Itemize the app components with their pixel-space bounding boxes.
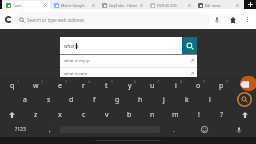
button[interactable]: g xyxy=(106,92,129,107)
button[interactable]: ! xyxy=(187,107,210,122)
button[interactable]: 8 xyxy=(164,77,187,92)
staticText: s xyxy=(47,95,51,105)
staticText: i xyxy=(175,81,177,91)
button[interactable]: n xyxy=(141,107,164,122)
button[interactable]: f xyxy=(83,92,106,107)
staticText: o xyxy=(196,81,201,91)
staticText: . xyxy=(173,126,175,134)
staticText: 7 xyxy=(157,79,160,84)
staticText: 2 xyxy=(41,79,44,84)
staticText: r xyxy=(82,81,85,91)
button[interactable]: . xyxy=(160,122,187,137)
button[interactable]: Search xyxy=(182,37,197,54)
button[interactable]: b xyxy=(118,107,141,122)
staticText: k xyxy=(185,95,189,105)
button[interactable]: New tab xyxy=(244,0,256,9)
button[interactable]: Search xyxy=(233,92,256,107)
button[interactable]: 5 xyxy=(95,77,118,92)
button[interactable]: Shift xyxy=(233,107,256,122)
staticText: v xyxy=(105,110,109,120)
button[interactable]: 0 xyxy=(210,77,233,92)
button[interactable]: Shift xyxy=(0,107,24,122)
staticText: 3 xyxy=(65,79,68,84)
button[interactable]: a xyxy=(13,92,37,107)
staticText: q xyxy=(10,81,15,91)
button[interactable]: Voice search xyxy=(210,13,223,26)
button[interactable]: ?123 xyxy=(0,122,40,137)
staticText: d xyxy=(69,95,74,105)
staticText: Tools xyxy=(13,3,43,8)
button[interactable]: 2 xyxy=(24,77,48,92)
button[interactable]: Meine Google xyxy=(50,1,98,9)
staticText: ! xyxy=(198,110,200,120)
staticText: z xyxy=(34,110,38,120)
button[interactable]: z xyxy=(24,107,48,122)
staticText: 1 xyxy=(17,79,20,84)
staticText: what is my ip xyxy=(64,58,90,64)
staticText: what is xyxy=(64,43,79,49)
button[interactable]: DVD 00 200 xyxy=(146,1,194,9)
staticText: 9 xyxy=(203,79,206,84)
staticText: l xyxy=(209,95,211,105)
staticText: GapTube - Home xyxy=(109,3,139,8)
staticText: Edr rome xyxy=(205,3,235,8)
button[interactable]: 6 xyxy=(118,77,141,92)
button[interactable]: k xyxy=(175,92,198,107)
staticText: 8 xyxy=(180,79,183,84)
staticText: Meine Google xyxy=(61,3,91,8)
button[interactable]: Emoji xyxy=(187,122,221,137)
button[interactable]: , xyxy=(40,122,60,137)
staticText: w xyxy=(33,81,39,91)
button[interactable]: Voice input xyxy=(221,122,256,137)
staticText: , xyxy=(49,126,51,134)
button[interactable]: Search or type web address xyxy=(15,12,210,27)
staticText: x xyxy=(58,110,62,120)
staticText: · xyxy=(53,123,55,128)
staticText: p xyxy=(219,81,224,91)
staticText: ? xyxy=(220,110,224,120)
staticText: y xyxy=(128,81,132,91)
button[interactable]: x xyxy=(48,107,72,122)
button[interactable]: l xyxy=(198,92,221,107)
staticText: 5 xyxy=(111,79,114,84)
button[interactable]: GapTube - Home xyxy=(98,1,146,9)
button[interactable]: what is my ip xyxy=(60,55,197,67)
button[interactable]: Home xyxy=(226,13,239,26)
button[interactable]: s xyxy=(37,92,60,107)
button[interactable]: 1 xyxy=(0,77,24,92)
button[interactable]: d xyxy=(60,92,83,107)
button[interactable]: 9 xyxy=(187,77,210,92)
button[interactable]: m xyxy=(164,107,187,122)
button[interactable]: v xyxy=(95,107,118,122)
staticText: Search or type web address xyxy=(27,17,84,23)
staticText: a xyxy=(23,95,27,105)
button[interactable]: 4 xyxy=(72,77,95,92)
staticText: u xyxy=(150,81,155,91)
staticText: ?123 xyxy=(15,126,26,133)
button[interactable]: ? xyxy=(210,107,233,122)
button[interactable]: Backspace xyxy=(233,77,256,92)
button[interactable]: c xyxy=(72,107,95,122)
staticText: b xyxy=(127,110,132,120)
button[interactable]: Tools xyxy=(2,1,50,9)
staticText: t xyxy=(105,81,108,91)
staticText: c xyxy=(82,110,86,120)
button[interactable]: 7 xyxy=(141,77,164,92)
button[interactable]: h xyxy=(129,92,152,107)
staticText: e xyxy=(58,81,62,91)
staticText: g xyxy=(115,95,120,105)
button[interactable]: Reload xyxy=(3,14,14,25)
staticText: DVD 00 200 xyxy=(157,3,187,8)
staticText: f xyxy=(93,95,96,105)
staticText: 4 xyxy=(88,79,91,84)
button[interactable]: what is cam xyxy=(60,68,197,80)
staticText: j xyxy=(163,95,165,105)
staticText: n xyxy=(150,110,155,120)
button[interactable]: Edr rome xyxy=(194,1,242,9)
button[interactable]: what is xyxy=(60,37,182,54)
button[interactable]: 3 xyxy=(48,77,72,92)
button[interactable]: More options xyxy=(241,13,253,25)
button[interactable]: j xyxy=(152,92,175,107)
staticText: what is cam xyxy=(64,71,88,77)
